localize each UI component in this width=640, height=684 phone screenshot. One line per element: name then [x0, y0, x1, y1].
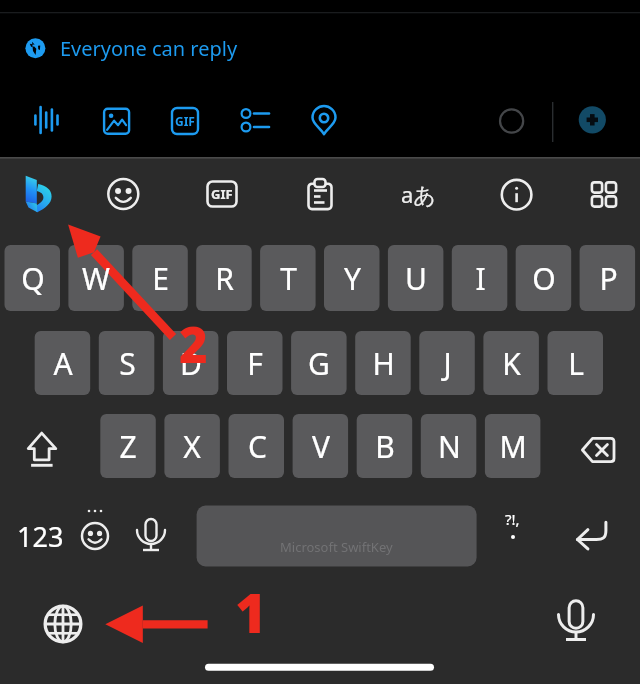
button[interactable]: B [357, 414, 413, 478]
button[interactable]: Symbols [490, 505, 534, 566]
staticText: J [443, 343, 452, 384]
staticText: X [183, 426, 201, 467]
staticText: A [53, 343, 73, 384]
button[interactable]: V [293, 414, 349, 478]
button[interactable]: Y [324, 245, 380, 311]
button[interactable]: M [485, 414, 541, 478]
staticText: Q [21, 258, 45, 299]
button[interactable]: K [483, 331, 539, 395]
button[interactable]: Language [396, 174, 440, 214]
button[interactable]: T [260, 245, 316, 311]
button[interactable]: Z [100, 414, 156, 478]
staticText: H [372, 343, 395, 384]
staticText: D [180, 343, 202, 384]
staticText: I [475, 258, 486, 299]
button[interactable]: F [227, 331, 283, 395]
button[interactable]: O [516, 245, 572, 311]
staticText: N [438, 426, 461, 467]
button[interactable]: L [548, 331, 604, 395]
staticText: V [312, 426, 330, 467]
staticText: GIF [175, 113, 195, 129]
staticText: R [215, 258, 234, 299]
staticText: Z [119, 426, 137, 467]
staticText: S [119, 343, 136, 384]
staticText: GIF [211, 185, 233, 203]
staticText: F [247, 343, 263, 384]
staticText: G [308, 343, 330, 384]
staticText: U [405, 258, 427, 299]
staticText: Microsoft SwiftKey [280, 538, 393, 556]
button[interactable]: N [421, 414, 477, 478]
button[interactable]: U [388, 245, 444, 311]
staticText: P [599, 258, 618, 299]
staticText: T [280, 258, 297, 299]
staticText: 1 [235, 575, 267, 649]
staticText: 2 [179, 311, 208, 378]
button[interactable]: GIF [165, 106, 205, 136]
button[interactable]: I [452, 245, 508, 311]
button[interactable]: H [355, 331, 411, 395]
button[interactable]: X [164, 414, 220, 478]
staticText: Everyone can reply [60, 35, 238, 62]
button[interactable]: Q [5, 245, 61, 311]
button[interactable]: D [163, 331, 219, 395]
button[interactable]: C [229, 414, 285, 478]
staticText: L [568, 343, 584, 384]
staticText: E [152, 258, 169, 299]
staticText: K [502, 343, 521, 384]
button[interactable]: S [99, 331, 155, 395]
staticText: M [499, 426, 527, 467]
button[interactable]: R [196, 245, 252, 311]
button[interactable]: E [132, 245, 188, 311]
staticText: W [82, 258, 110, 299]
staticText: Y [344, 258, 361, 299]
staticText: ?!, [505, 509, 520, 529]
button[interactable]: A [35, 331, 91, 395]
staticText: 123 [17, 518, 64, 555]
button[interactable]: 123 [14, 511, 66, 561]
button[interactable]: GIF keyboard [202, 179, 242, 209]
staticText: B [375, 426, 395, 467]
button[interactable]: G [291, 331, 347, 395]
staticText: C [248, 426, 267, 467]
button[interactable]: J [419, 331, 475, 395]
button[interactable]: P [580, 245, 636, 311]
button[interactable]: W [68, 245, 124, 311]
button[interactable]: Space [196, 505, 477, 566]
staticText: aあ [401, 179, 436, 209]
staticText: O [532, 258, 556, 299]
